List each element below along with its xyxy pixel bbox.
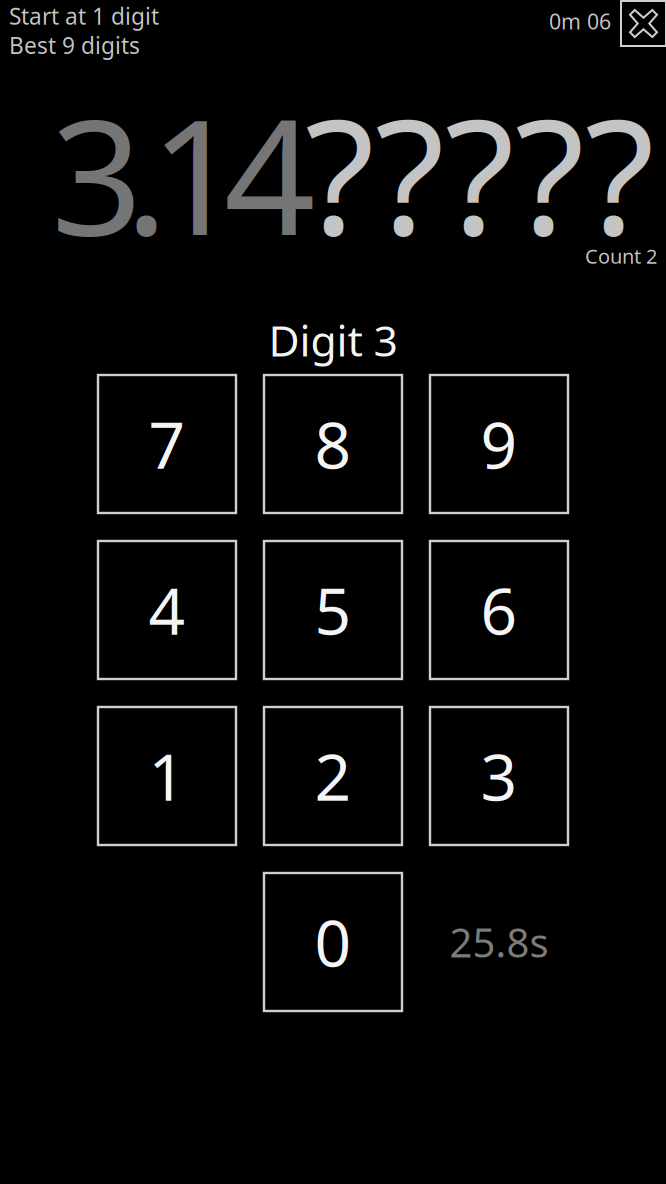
staticText: Best 9 digits [9,30,140,60]
staticText: 4 [148,567,185,652]
button[interactable]: 4 [98,541,236,679]
staticText: 8 [314,401,351,486]
staticText: 1 [148,733,185,818]
staticText: 9 [480,401,517,486]
button[interactable]: 8 [264,375,402,513]
staticText: 5 [314,567,351,652]
staticText: 0 [314,899,351,984]
button[interactable]: 1 [98,707,236,845]
staticText: 25.8s [449,915,548,968]
staticText: ????? [305,67,654,279]
staticText: Start at 1 digit [9,1,159,31]
button[interactable]: 3 [430,707,568,845]
staticText: 0m 06 [549,7,611,35]
button[interactable]: 9 [430,375,568,513]
staticText: 2 [314,733,351,818]
staticText: 3 [480,733,517,818]
button[interactable]: 6 [430,541,568,679]
button[interactable]: 7 [98,375,236,513]
staticText: Digit 3 [268,312,397,368]
button[interactable]: 0 [264,873,402,1011]
staticText: 3.14 [51,67,316,279]
button[interactable]: Quit session [621,1,666,46]
staticText: 6 [480,567,517,652]
staticText: 7 [148,401,185,486]
button[interactable]: 5 [264,541,402,679]
button[interactable]: 2 [264,707,402,845]
staticText: Count 2 [585,243,657,269]
